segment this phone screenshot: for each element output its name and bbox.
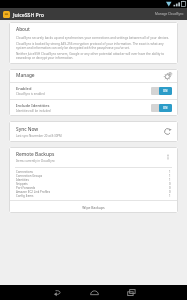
staticText: JuiceSSH Pro (13, 11, 45, 18)
staticText: Connections (16, 170, 169, 174)
staticText: Identities will be included (16, 109, 51, 113)
staticText: Items currently in CloudSync (16, 159, 55, 163)
staticText: 1 (169, 170, 171, 174)
other: Sync now (163, 127, 172, 136)
staticText: Snippets (16, 182, 169, 186)
staticText: Wipe Backups (82, 205, 105, 210)
staticText: Sync Now (16, 126, 39, 133)
button[interactable]: Include Identities (9, 100, 178, 116)
staticText: 0 (169, 186, 171, 190)
staticText: 0 (169, 190, 171, 194)
staticText: 1 (169, 174, 171, 178)
other: Settings (164, 72, 172, 80)
staticText: CloudSync is enabled (16, 92, 45, 96)
button[interactable]: More options (164, 153, 172, 161)
staticText: 1 (169, 178, 171, 182)
staticText: Manage CloudSync (155, 12, 184, 16)
staticText: 1 (169, 194, 171, 198)
staticText: CloudSync securely backs up and synchron… (16, 36, 170, 40)
button[interactable]: Recent apps (121, 285, 141, 300)
staticText: Identities (16, 178, 169, 182)
staticText: ON (163, 89, 168, 93)
staticText: 0 (169, 182, 171, 186)
staticText: Include Identities (16, 103, 50, 108)
staticText: Manage (16, 72, 35, 79)
button[interactable]: Wipe Backups (9, 201, 178, 213)
button[interactable]: Back (47, 285, 67, 300)
button[interactable]: Home (84, 285, 104, 300)
staticText: Port Forwards (16, 186, 169, 190)
staticText: Config Items (16, 194, 169, 198)
staticText: Last sync November 20 at 8:30PM (16, 134, 62, 138)
staticText: Remote Backups (16, 151, 55, 158)
button[interactable]: Manage (9, 69, 178, 82)
button[interactable]: Toggle on (151, 104, 172, 112)
button[interactable]: Remote Backups (9, 147, 178, 167)
staticText: ON (163, 106, 168, 110)
staticText: About (16, 26, 30, 33)
staticText: CloudSync is backed by strong AES-256 en… (16, 42, 171, 50)
staticText: Enabled (16, 86, 32, 91)
button[interactable]: Enabled (9, 83, 178, 99)
button[interactable]: Toggle on (151, 87, 172, 95)
staticText: Amazon EC2 Link Profiles (16, 190, 169, 194)
button[interactable]: App icon, navigate up (3, 11, 10, 18)
button[interactable]: Sync Now (9, 121, 178, 142)
staticText: Connection Groups (16, 174, 169, 178)
staticText: Neither JuiceSSH CloudSync servers, Goog… (16, 52, 171, 60)
